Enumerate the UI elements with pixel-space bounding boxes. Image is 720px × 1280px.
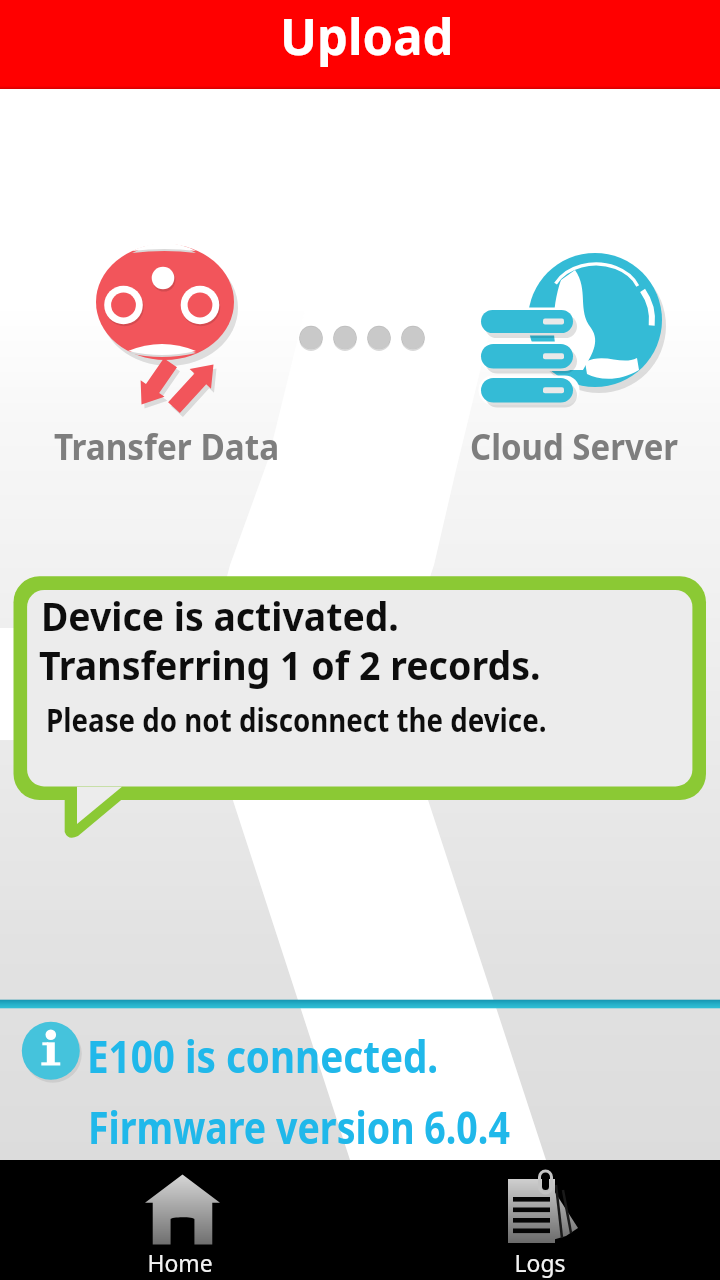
staticText: Device is activated. <box>41 589 399 643</box>
staticText: Please do not disconnect the device. <box>46 697 547 742</box>
staticText: E100 is connected. <box>87 1025 439 1086</box>
button[interactable]: Home <box>0 1160 360 1280</box>
button[interactable]: Logs <box>360 1160 720 1280</box>
button[interactable]: Upload <box>0 0 720 89</box>
staticText: Firmware version 6.0.4 <box>88 1095 510 1157</box>
staticText: Cloud Server <box>470 422 679 471</box>
staticText: Transfer Data <box>54 422 280 471</box>
staticText: Transferring 1 of 2 records. <box>39 637 541 691</box>
staticText: Upload <box>280 1 454 70</box>
staticText: Logs <box>365 1247 715 1279</box>
staticText: Home <box>5 1247 355 1279</box>
